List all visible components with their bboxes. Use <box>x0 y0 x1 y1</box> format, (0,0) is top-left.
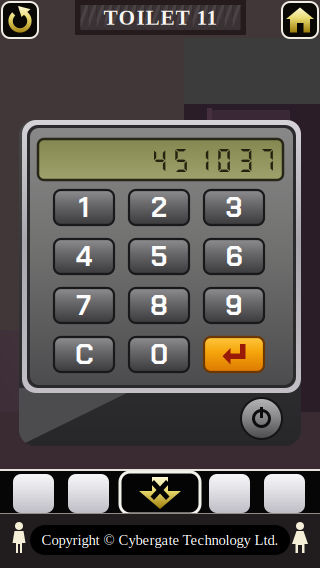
staticText: 451037 <box>150 145 276 174</box>
button[interactable]: 0 <box>129 337 189 372</box>
button[interactable]: 4 <box>54 239 114 274</box>
button[interactable]: Empty inventory slot <box>209 474 250 513</box>
button[interactable]: Selected item: down arrow <box>120 472 200 514</box>
staticText: C <box>75 336 93 373</box>
staticText: 4 <box>76 238 92 275</box>
button[interactable]: 6 <box>204 239 264 274</box>
button[interactable]: Empty inventory slot <box>68 474 109 513</box>
staticText: 1 <box>78 189 89 226</box>
staticText: 5 <box>150 238 167 275</box>
staticText: 0 <box>150 336 168 373</box>
button[interactable]: Enter <box>204 337 264 372</box>
button[interactable]: 9 <box>204 288 264 323</box>
button[interactable]: Restart <box>0 0 40 40</box>
button[interactable]: Power <box>241 398 282 439</box>
button[interactable]: 8 <box>129 288 189 323</box>
button[interactable]: 3 <box>204 190 264 225</box>
staticText: 8 <box>150 287 168 324</box>
staticText: 7 <box>76 287 91 324</box>
staticText: TOILET 11 <box>103 6 217 29</box>
staticText: 6 <box>225 238 242 275</box>
staticText: 2 <box>151 189 167 226</box>
staticText: 3 <box>225 189 242 226</box>
button[interactable]: 2 <box>129 190 189 225</box>
button[interactable]: Empty inventory slot <box>264 474 305 513</box>
button[interactable]: 1 <box>54 190 114 225</box>
staticText: Copyright © Cybergate Technology Ltd. <box>41 532 278 548</box>
button[interactable]: Empty inventory slot <box>13 474 54 513</box>
button[interactable]: C <box>54 337 114 372</box>
button[interactable]: Home <box>280 0 320 40</box>
staticText: 9 <box>225 287 243 324</box>
button[interactable]: 7 <box>54 288 114 323</box>
button[interactable]: 5 <box>129 239 189 274</box>
